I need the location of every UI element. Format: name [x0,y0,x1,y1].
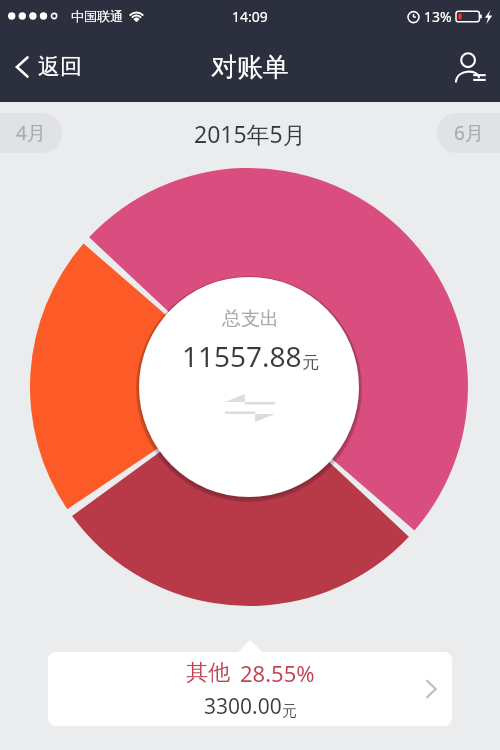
staticText: 3300.00 [204,692,282,721]
staticText: 其他 [186,659,230,687]
staticText: 4月 [16,120,46,146]
button[interactable]: 返回 [0,45,96,89]
button[interactable]: 6月 [437,113,500,153]
staticText: 13% [424,7,452,26]
staticText: 中国联通 [71,8,123,24]
staticText: 元 [302,352,319,373]
staticText: 返回 [38,53,82,81]
button[interactable]: Switch [218,387,282,429]
staticText: 对账单 [211,51,289,84]
staticText: 总支出 [222,307,279,331]
button[interactable]: 4月 [0,113,62,153]
staticText: 元 [282,702,297,721]
button[interactable]: Contacts [440,40,500,94]
staticText: 28.55% [240,658,315,688]
button[interactable]: 其他 [48,652,452,726]
staticText: 6月 [454,120,484,146]
button[interactable]: Details [411,664,452,714]
staticText: 14:09 [232,7,268,26]
staticText: 2015年5月 [194,118,306,149]
staticText: 11557.88 [182,337,302,375]
